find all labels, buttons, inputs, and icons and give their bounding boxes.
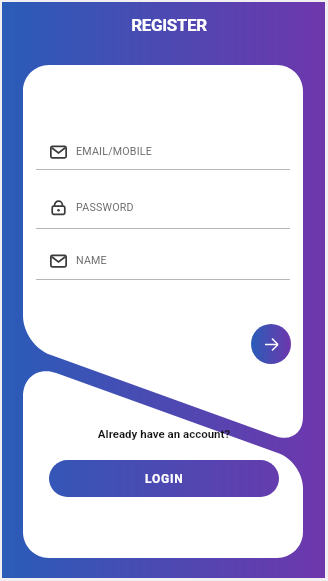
button[interactable]: NAME	[23, 248, 303, 282]
staticText: LOGIN	[145, 472, 184, 486]
staticText: PASSWORD	[76, 201, 134, 214]
button[interactable]: LOGIN	[49, 460, 279, 497]
button[interactable]: PASSWORD	[23, 195, 303, 231]
staticText: REGISTER	[5, 15, 328, 35]
button[interactable]: Next	[251, 324, 291, 364]
button[interactable]: EMAIL/MOBILE	[23, 139, 303, 172]
staticText: NAME	[76, 254, 107, 267]
staticText: Already have an account?	[0, 427, 328, 440]
staticText: EMAIL/MOBILE	[76, 145, 153, 158]
